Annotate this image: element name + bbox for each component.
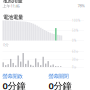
- staticText: 50%: [72, 29, 78, 32]
- staticText: 電池用量: [2, 0, 22, 4]
- staticText: 螢幕關閉: [48, 73, 68, 80]
- staticText: 電池電量: [3, 14, 23, 21]
- staticText: 0分鐘: [48, 80, 71, 90]
- staticText: 上午11:46: [2, 3, 19, 9]
- staticText: 0分鐘: [2, 80, 25, 90]
- staticText: 0%: [72, 39, 76, 42]
- staticText: 螢幕開啟: [2, 73, 22, 80]
- staticText: 60分: [72, 50, 79, 53]
- staticText: 0分: [72, 65, 77, 69]
- staticText: 30分: [72, 58, 79, 61]
- staticText: 78%: [77, 3, 84, 8]
- staticText: 0分: [3, 42, 9, 47]
- staticText: 100%: [72, 19, 80, 22]
